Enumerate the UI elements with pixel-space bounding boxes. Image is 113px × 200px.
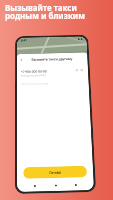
button[interactable]: Навигация 0 xyxy=(32,183,38,189)
staticText: Из списка контактов xyxy=(21,82,48,86)
button[interactable]: Навигация 2 xyxy=(73,182,79,188)
staticText: Готово xyxy=(49,169,62,175)
staticText: Вызовите такси другому xyxy=(31,56,73,62)
button[interactable]: Очистить xyxy=(79,68,84,72)
button[interactable]: Навигация 1 xyxy=(53,182,59,189)
staticText: 9:41 xyxy=(21,39,27,42)
button[interactable]: Готово xyxy=(23,166,87,179)
button[interactable]: Контакты xyxy=(74,68,79,73)
button[interactable]: Назад xyxy=(19,57,24,62)
staticText: +7 900 000-00-00 xyxy=(21,69,47,73)
staticText: Вызывайте такси родным и близким xyxy=(5,2,85,21)
staticText: Номер получателя xyxy=(21,73,46,78)
